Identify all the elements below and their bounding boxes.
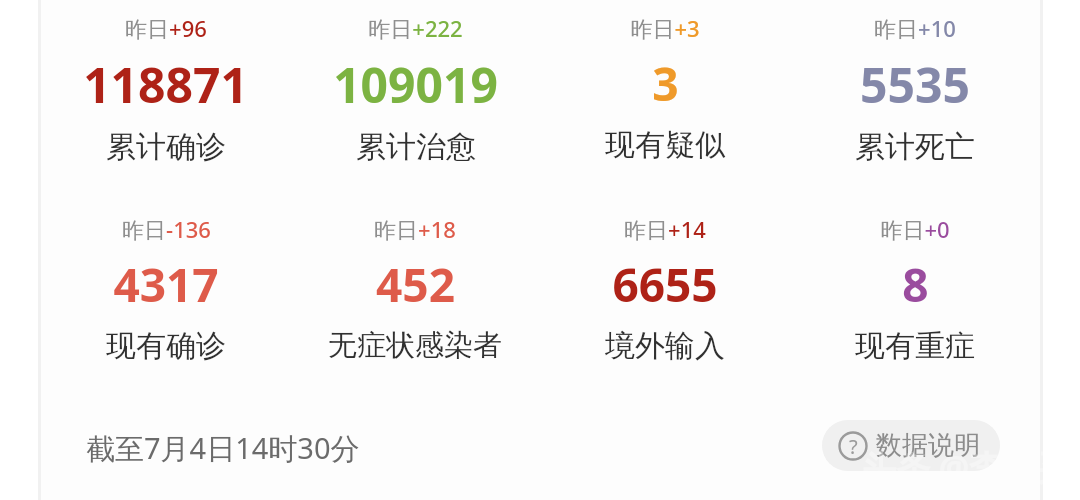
staticText: 3 [652, 52, 679, 115]
staticText: 4317 [113, 253, 219, 316]
staticText: 118871 [83, 52, 248, 117]
button[interactable]: 昨日+10 [855, 13, 975, 166]
button[interactable]: 昨日+18 [328, 214, 502, 364]
staticText: 109019 [333, 52, 498, 117]
staticText: 境外输入 [605, 327, 725, 365]
staticText: 现有疑似 [605, 126, 725, 164]
staticText: 昨日+3 [630, 13, 700, 43]
staticText: 数据说明 [876, 429, 980, 462]
staticText: 昨日-136 [122, 214, 211, 244]
button[interactable]: 昨日+14 [605, 214, 725, 365]
staticText: 昨日+18 [374, 214, 456, 244]
staticText: 现有确诊 [106, 327, 226, 365]
staticText: 累计治愈 [356, 128, 476, 166]
staticText: 昨日+0 [880, 214, 950, 244]
staticText: 累计确诊 [106, 128, 226, 166]
button[interactable]: 昨日+222 [333, 13, 498, 166]
staticText: 8 [902, 253, 929, 316]
staticText: 现有重症 [855, 327, 975, 365]
staticText: 昨日+96 [125, 13, 207, 43]
staticText: 昨日+10 [874, 13, 956, 43]
staticText: 6655 [612, 253, 718, 316]
staticText: 5535 [860, 52, 970, 117]
staticText: 累计死亡 [855, 128, 975, 166]
staticText: ? [849, 433, 858, 460]
staticText: 昨日+14 [624, 214, 706, 244]
staticText: 昨日+222 [368, 13, 463, 43]
staticText: 头条 @李孟买 [862, 444, 1072, 490]
button[interactable]: 数据说明 [822, 420, 1000, 471]
button[interactable]: 昨日+0 [855, 214, 975, 365]
staticText: 无症状感染者 [328, 327, 502, 364]
button[interactable]: 昨日+3 [605, 13, 725, 164]
button[interactable]: 昨日+96 [83, 13, 248, 166]
button[interactable]: 昨日-136 [106, 214, 226, 365]
staticText: 截至7月4日14时30分 [86, 428, 360, 468]
staticText: 452 [376, 253, 455, 316]
